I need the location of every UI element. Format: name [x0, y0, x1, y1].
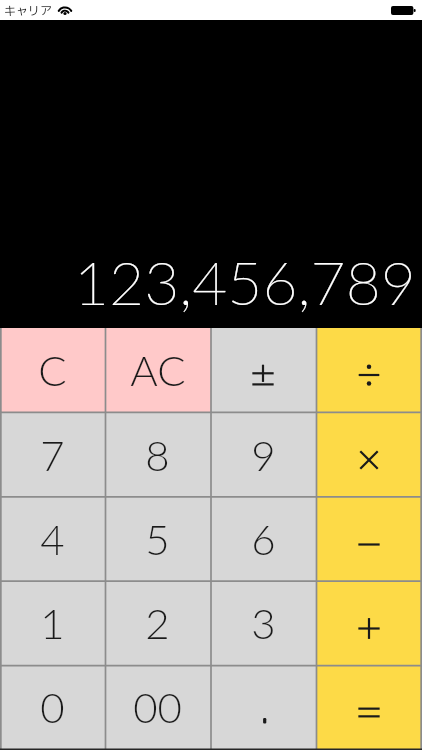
button[interactable]: Equals: [316, 666, 422, 750]
staticText: 8: [145, 430, 170, 480]
staticText: キャリア: [4, 2, 53, 19]
button[interactable]: Clear: [0, 328, 105, 413]
staticText: 3: [251, 598, 276, 648]
button[interactable]: Seven: [0, 413, 105, 498]
staticText: C: [38, 345, 67, 395]
button[interactable]: Decimal point: [210, 666, 316, 750]
staticText: 5: [145, 514, 170, 564]
staticText: 4: [40, 514, 65, 564]
button[interactable]: Minus: [316, 498, 422, 582]
staticText: AC: [130, 345, 186, 395]
button[interactable]: Divide: [316, 328, 422, 413]
button[interactable]: Four: [0, 498, 105, 582]
button[interactable]: Five: [105, 498, 210, 582]
button[interactable]: Eight: [105, 413, 210, 498]
button[interactable]: Zero: [0, 666, 105, 750]
button[interactable]: Two: [105, 582, 210, 666]
staticText: 9: [251, 430, 276, 480]
button[interactable]: Nine: [210, 413, 316, 498]
button[interactable]: Six: [210, 498, 316, 582]
staticText: 123,456,789: [74, 245, 416, 318]
staticText: 00: [133, 682, 182, 732]
button[interactable]: Multiply: [316, 413, 422, 498]
button[interactable]: Double zero: [105, 666, 210, 750]
staticText: 2: [145, 598, 170, 648]
button[interactable]: Plus: [316, 582, 422, 666]
staticText: 7: [40, 430, 65, 480]
button[interactable]: All clear: [105, 328, 210, 413]
staticText: 1: [40, 598, 65, 648]
button[interactable]: Three: [210, 582, 316, 666]
button[interactable]: Plus minus: [210, 328, 316, 413]
staticText: 0: [40, 682, 65, 732]
button[interactable]: One: [0, 582, 105, 666]
staticText: 6: [251, 514, 276, 564]
